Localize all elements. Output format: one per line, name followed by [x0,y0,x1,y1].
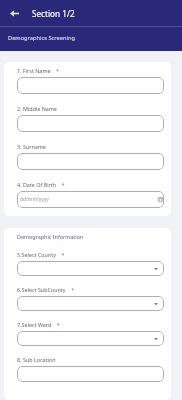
button[interactable]: Back [7,6,21,20]
staticText: Demographic Information [17,233,84,240]
button[interactable] [17,77,164,94]
button[interactable] [17,331,164,346]
button[interactable]: dd/mm/yyyy [17,191,164,208]
button[interactable] [17,115,164,132]
staticText: 6.Select SubCounty * [17,286,75,293]
staticText: 1. First Name * [17,67,60,74]
staticText: 8. Sub Location [17,356,56,363]
button[interactable] [17,296,164,311]
staticText: 7.Select Ward * [17,321,60,328]
staticText: 5.Select County * [17,251,65,258]
staticText: Demographics Screening [8,34,75,42]
staticText: dd/mm/yyyy [20,196,49,203]
staticText: Section 1/2 [32,8,75,19]
staticText: 3. Surname [17,143,46,150]
button[interactable]: Demographics Screening [3,28,80,47]
button[interactable] [17,261,164,276]
button[interactable] [17,153,164,170]
button[interactable] [17,366,164,382]
staticText: 2. Middle Name [17,105,57,112]
staticText: 4. Date Of Birth * [17,181,65,188]
